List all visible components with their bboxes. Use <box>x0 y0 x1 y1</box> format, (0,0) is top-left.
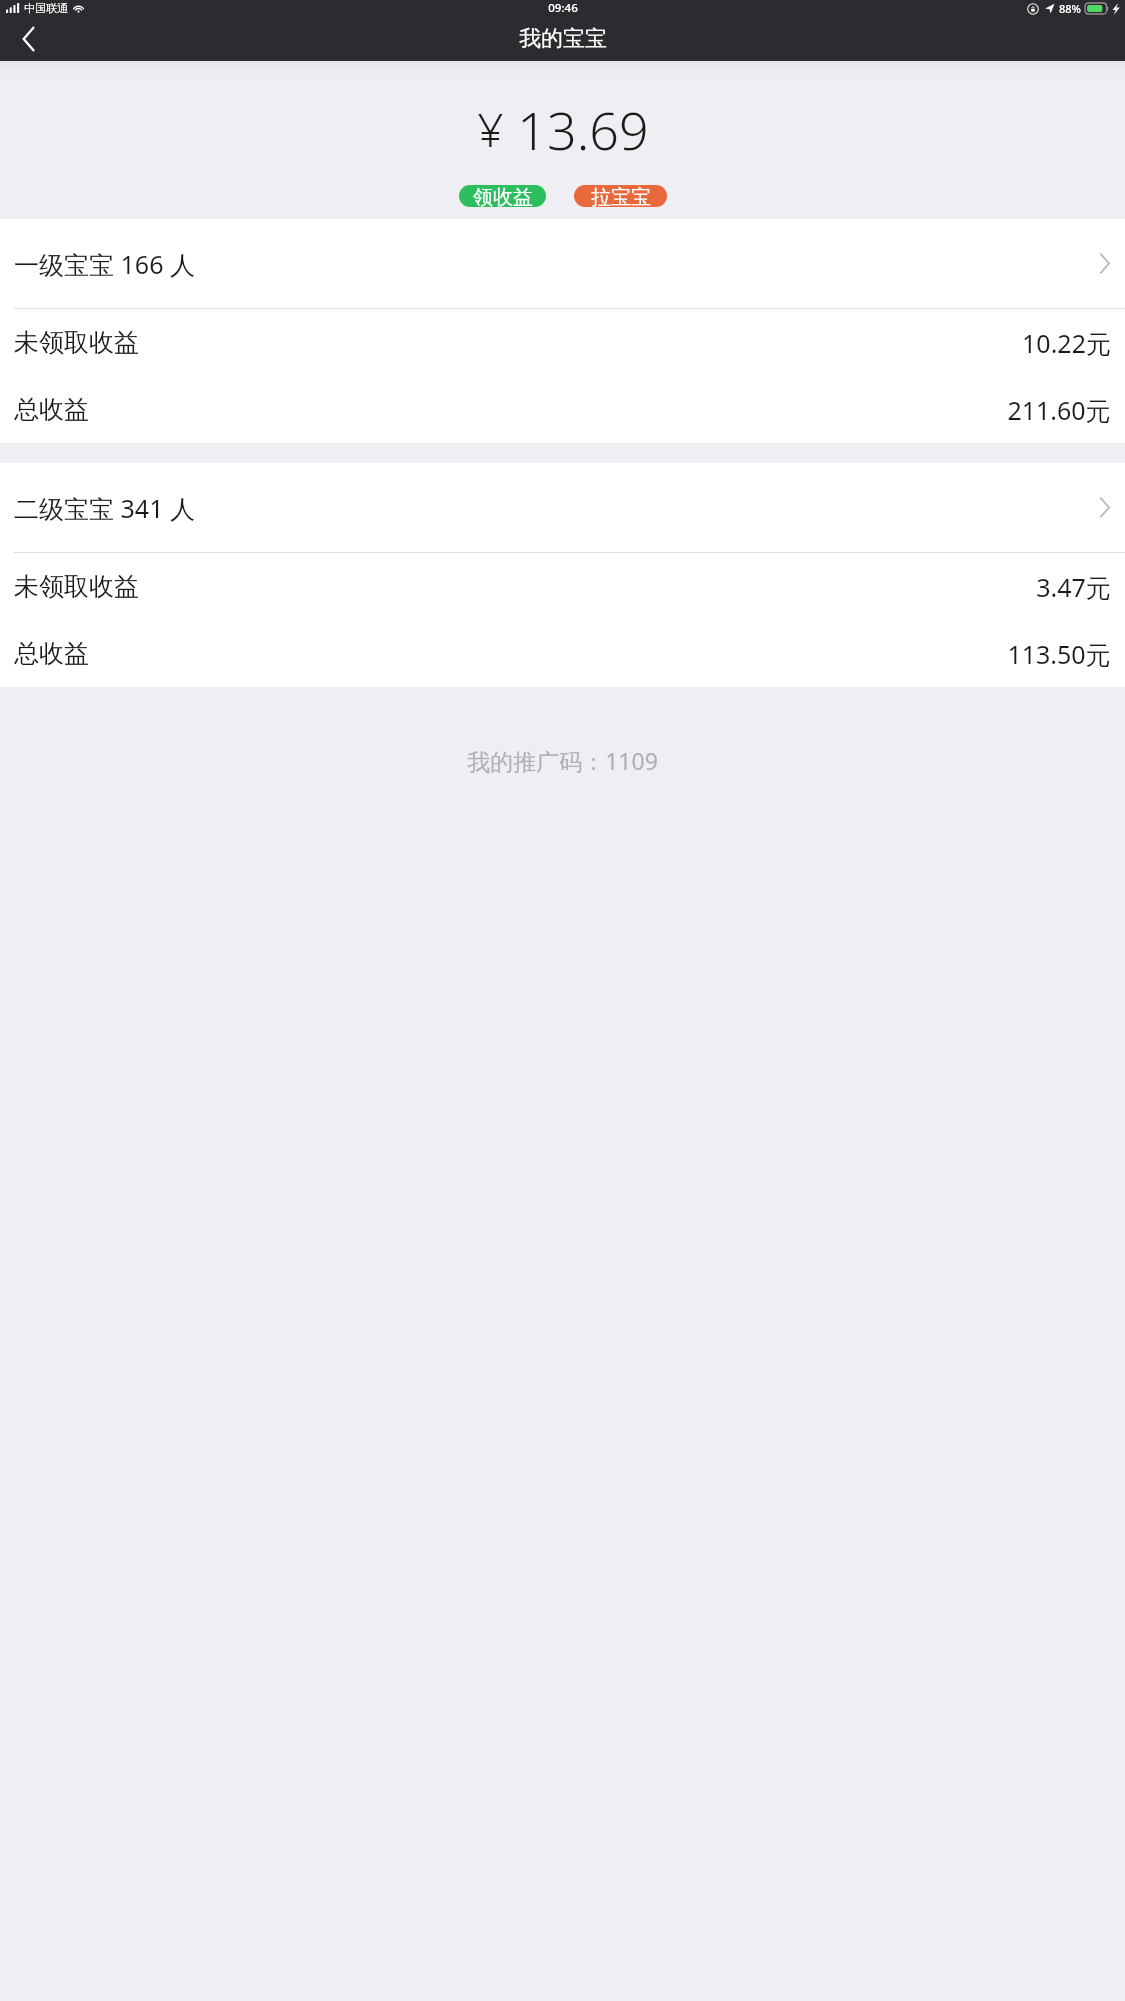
staticText: 未领取收益 <box>14 327 139 358</box>
staticText: 我的宝宝 <box>519 25 607 53</box>
staticText: 113.50元 <box>1007 637 1111 671</box>
staticText: 09:46 <box>548 0 578 16</box>
button[interactable]: 一级宝宝 166 人 <box>0 219 1125 308</box>
staticText: 总收益 <box>14 638 89 669</box>
button[interactable]: 总收益 <box>0 620 1125 687</box>
button[interactable]: 未领取收益 <box>0 309 1125 376</box>
button[interactable]: 未领取收益 <box>0 553 1125 620</box>
staticText: 中国联通 <box>24 1 68 15</box>
staticText: 我的推广码：1109 <box>467 745 658 776</box>
staticText: 未领取收益 <box>14 571 139 602</box>
staticText: ¥ <box>477 98 504 161</box>
button[interactable]: 领收益 <box>459 185 546 207</box>
staticText: 总收益 <box>14 394 89 425</box>
staticText: 211.60元 <box>1007 393 1111 427</box>
button[interactable]: 总收益 <box>0 376 1125 443</box>
staticText: 拉宝宝 <box>591 185 651 207</box>
button[interactable]: 拉宝宝 <box>574 185 667 207</box>
staticText: 13.69 <box>517 94 649 165</box>
staticText: 领收益 <box>473 185 533 207</box>
staticText: 一级宝宝 166 人 <box>14 247 195 281</box>
staticText: 3.47元 <box>1036 570 1111 604</box>
button[interactable]: 二级宝宝 341 人 <box>0 463 1125 552</box>
staticText: 88% <box>1059 1 1081 16</box>
staticText: 10.22元 <box>1022 326 1111 360</box>
button[interactable]: Back <box>0 16 56 61</box>
staticText: 二级宝宝 341 人 <box>14 491 195 525</box>
